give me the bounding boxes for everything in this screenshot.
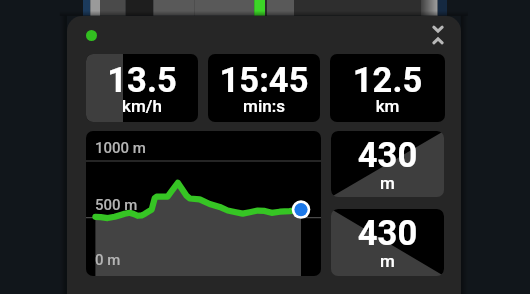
button[interactable]: 13.5	[86, 54, 198, 122]
button[interactable]: 15:45	[208, 54, 320, 122]
staticText: m	[331, 251, 444, 271]
staticText: km/h	[86, 96, 198, 116]
staticText: 1000 m	[95, 139, 146, 157]
staticText: km	[330, 96, 445, 116]
staticText: 15:45	[208, 60, 320, 100]
staticText: 430	[331, 135, 444, 175]
staticText: 500 m	[95, 196, 138, 214]
staticText: 12.5	[330, 60, 445, 100]
button[interactable]: 1000 m	[86, 131, 321, 276]
staticText: m	[331, 173, 444, 193]
staticText: 0 m	[95, 251, 121, 269]
button[interactable]: Collapse panel	[421, 18, 455, 52]
button[interactable]: 12.5	[330, 54, 445, 122]
staticText: 13.5	[86, 60, 198, 100]
button[interactable]: 430	[331, 131, 444, 197]
button[interactable]: 430	[331, 209, 444, 276]
staticText: 430	[331, 213, 444, 253]
staticText: min:s	[208, 96, 320, 116]
